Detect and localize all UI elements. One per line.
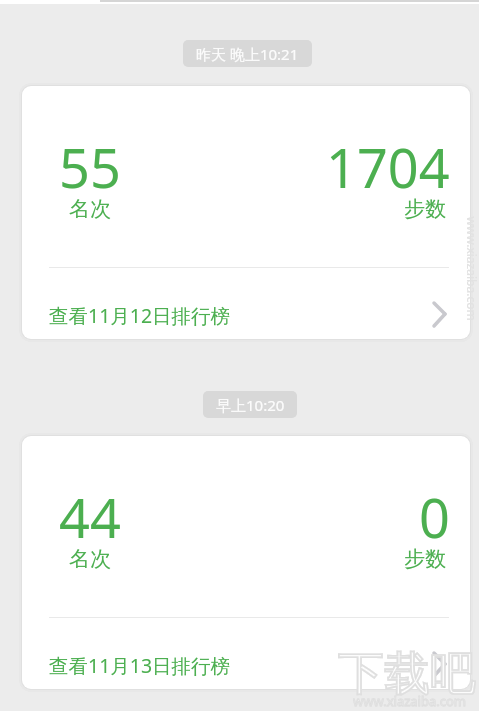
staticText: 查看11月12日排行榜 [49,302,231,329]
staticText: www.xiazaiba.com [353,692,466,708]
staticText: 查看11月13日排行榜 [49,652,231,679]
staticText: 44 [59,480,121,546]
staticText: www.xiazaiba.com [466,216,479,321]
staticText: 昨天 晚上10:21 [196,44,299,64]
staticText: 名次 [69,546,111,572]
staticText: 下载吧 [338,645,476,701]
staticText: 下载吧 [338,645,476,701]
staticText: 早上10:20 [216,395,285,415]
staticText: 55 [59,130,121,196]
staticText: 0 [419,480,450,546]
staticText: 步数 [404,196,446,222]
staticText: www.xiazaiba.com [353,692,466,708]
staticText: 步数 [404,546,446,572]
staticText: 名次 [69,196,111,222]
staticText: 1704 [326,130,450,196]
